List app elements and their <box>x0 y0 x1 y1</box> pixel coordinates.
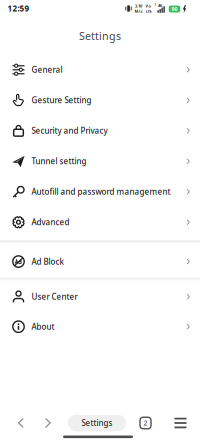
button[interactable]: Autofill and password management <box>0 176 200 207</box>
staticText: Settings <box>81 418 112 428</box>
staticText: 90 <box>171 5 177 13</box>
button[interactable]: Gesture Setting <box>0 85 200 115</box>
staticText: Ad Block <box>31 256 63 267</box>
staticText: LTE <box>145 8 151 14</box>
button[interactable]: Advanced <box>0 207 200 237</box>
staticText: General <box>31 64 62 75</box>
staticText: ¹ <box>154 3 156 9</box>
staticText: M/s <box>134 8 142 14</box>
button[interactable]: Settings <box>68 415 126 431</box>
button[interactable]: Tabs <box>140 417 151 429</box>
button[interactable]: Forward <box>35 410 61 436</box>
staticText: About <box>31 321 54 332</box>
staticText: Gesture Setting <box>31 95 91 105</box>
staticText: Advanced <box>31 217 69 227</box>
button[interactable]: Tunnel setting <box>0 146 200 176</box>
staticText: 2 <box>143 419 147 427</box>
staticText: Tunnel setting <box>31 156 86 166</box>
staticText: 3.10 <box>135 3 142 8</box>
staticText: User Center <box>31 291 77 302</box>
button[interactable]: Ad Block <box>0 246 200 277</box>
staticText: Vo <box>145 3 151 8</box>
staticText: 12:59 <box>7 3 29 14</box>
staticText: Autofill and password management <box>31 186 170 197</box>
staticText: Settings <box>79 29 121 43</box>
button[interactable]: Security and Privacy <box>0 115 200 146</box>
button[interactable]: User Center <box>0 282 200 312</box>
staticText: Security and Privacy <box>31 125 107 136</box>
button[interactable]: Menu <box>174 418 186 428</box>
staticText: 46 <box>158 3 162 8</box>
button[interactable]: About <box>0 312 200 342</box>
button[interactable]: General <box>0 54 200 85</box>
button[interactable]: Back <box>8 410 34 436</box>
